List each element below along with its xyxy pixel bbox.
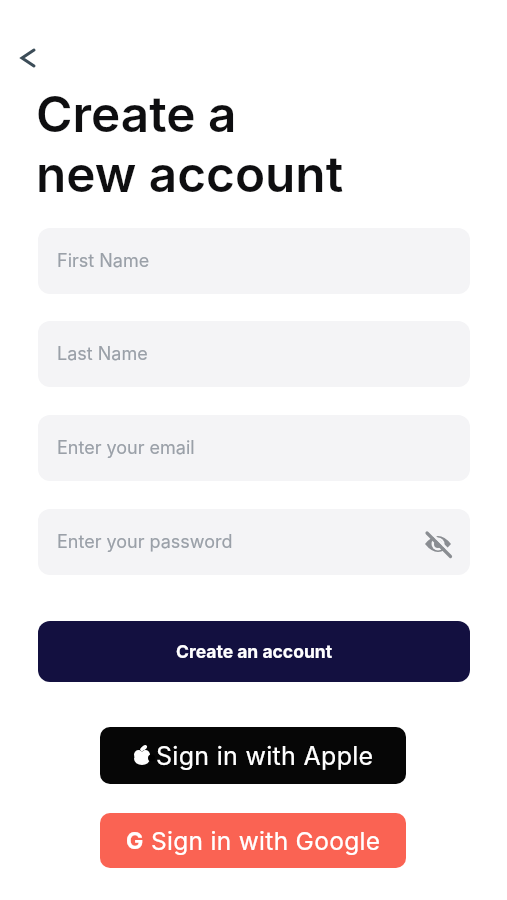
button[interactable]: Create an account <box>38 621 470 682</box>
button[interactable]: Enter your email <box>38 415 470 481</box>
staticText: Enter your email <box>57 437 195 459</box>
staticText: Enter your password <box>57 531 233 553</box>
staticText: Sign in with Apple <box>156 741 374 771</box>
button[interactable]: First Name <box>38 228 470 294</box>
staticText: Sign in with Google <box>151 826 381 856</box>
button[interactable]: G <box>100 813 406 868</box>
button[interactable]: Last Name <box>38 321 470 387</box>
staticText: G <box>126 827 144 855</box>
staticText: Last Name <box>57 343 148 365</box>
staticText: First Name <box>57 250 150 272</box>
staticText: Create an account <box>176 641 333 662</box>
staticText: Create a new account <box>36 84 344 204</box>
button[interactable]: Sign in with Apple <box>100 727 406 784</box>
button[interactable]: Enter your password <box>38 509 470 575</box>
button[interactable] <box>14 44 42 72</box>
